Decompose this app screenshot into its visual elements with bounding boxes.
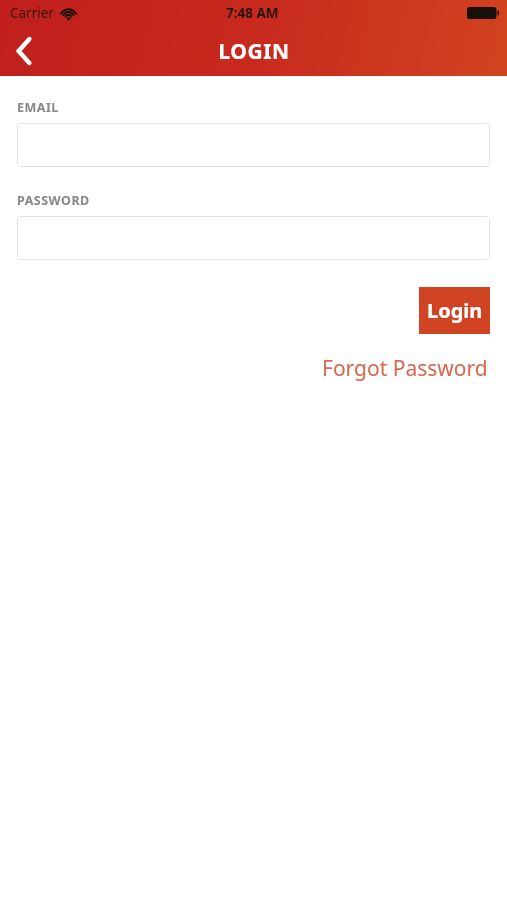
staticText: Forgot Password (322, 354, 488, 383)
button[interactable]: Email input (17, 123, 490, 167)
button[interactable]: Password input (17, 216, 490, 260)
staticText: EMAIL (17, 99, 59, 116)
button[interactable]: Back (0, 27, 48, 75)
staticText: LOGIN (218, 37, 290, 66)
staticText: Carrier (10, 4, 54, 22)
button[interactable]: Forgot Password (320, 351, 490, 386)
staticText: Login (427, 297, 483, 324)
button[interactable]: Login (419, 287, 490, 334)
staticText: PASSWORD (17, 192, 90, 209)
staticText: 7:48 AM (226, 4, 279, 22)
